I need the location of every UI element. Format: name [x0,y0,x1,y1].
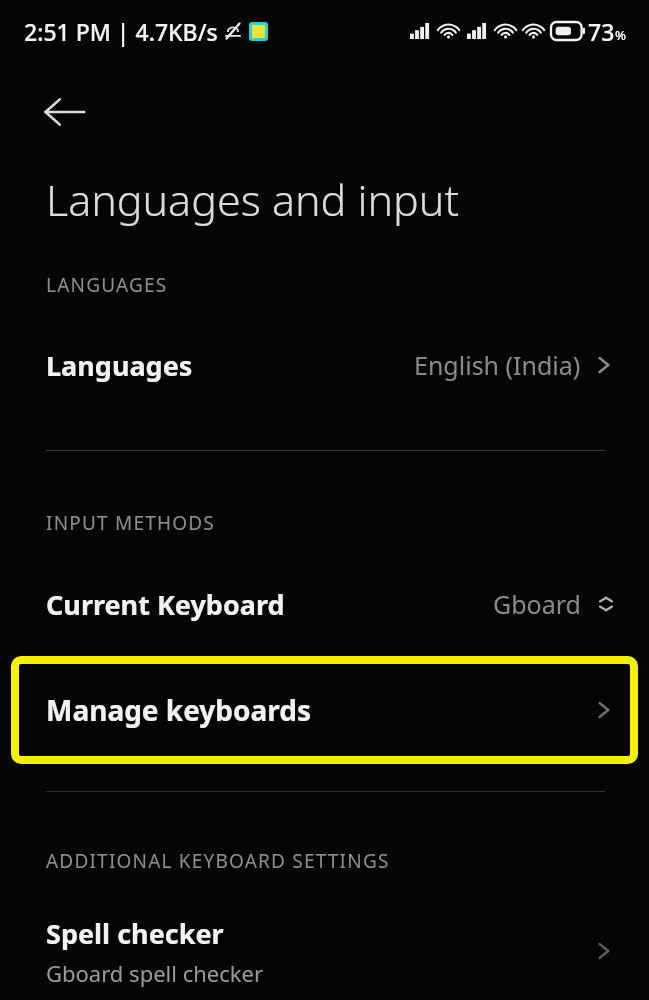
staticText: Current Keyboard [46,586,285,623]
button[interactable]: Manage keyboards [11,656,638,764]
staticText: LANGUAGES [46,272,168,298]
staticText: ADDITIONAL KEYBOARD SETTINGS [46,848,390,874]
button[interactable]: Spell checker [0,914,649,988]
staticText: Spell checker [46,915,224,952]
staticText: Languages and input [46,170,460,229]
staticText: English (India) [414,348,581,382]
staticText: Languages [46,347,193,384]
staticText: Manage keyboards [46,691,593,729]
staticText: INPUT METHODS [46,510,215,536]
staticText: Gboard spell checker [46,958,264,988]
button[interactable]: Languages [0,336,649,394]
staticText: % [615,26,627,44]
button[interactable]: Back [30,78,98,146]
button[interactable]: Current Keyboard [0,578,649,630]
staticText: 73 [588,16,615,47]
staticText: 2:51 PM | 4.7KB/s [24,16,218,47]
staticText: Gboard [493,587,581,621]
